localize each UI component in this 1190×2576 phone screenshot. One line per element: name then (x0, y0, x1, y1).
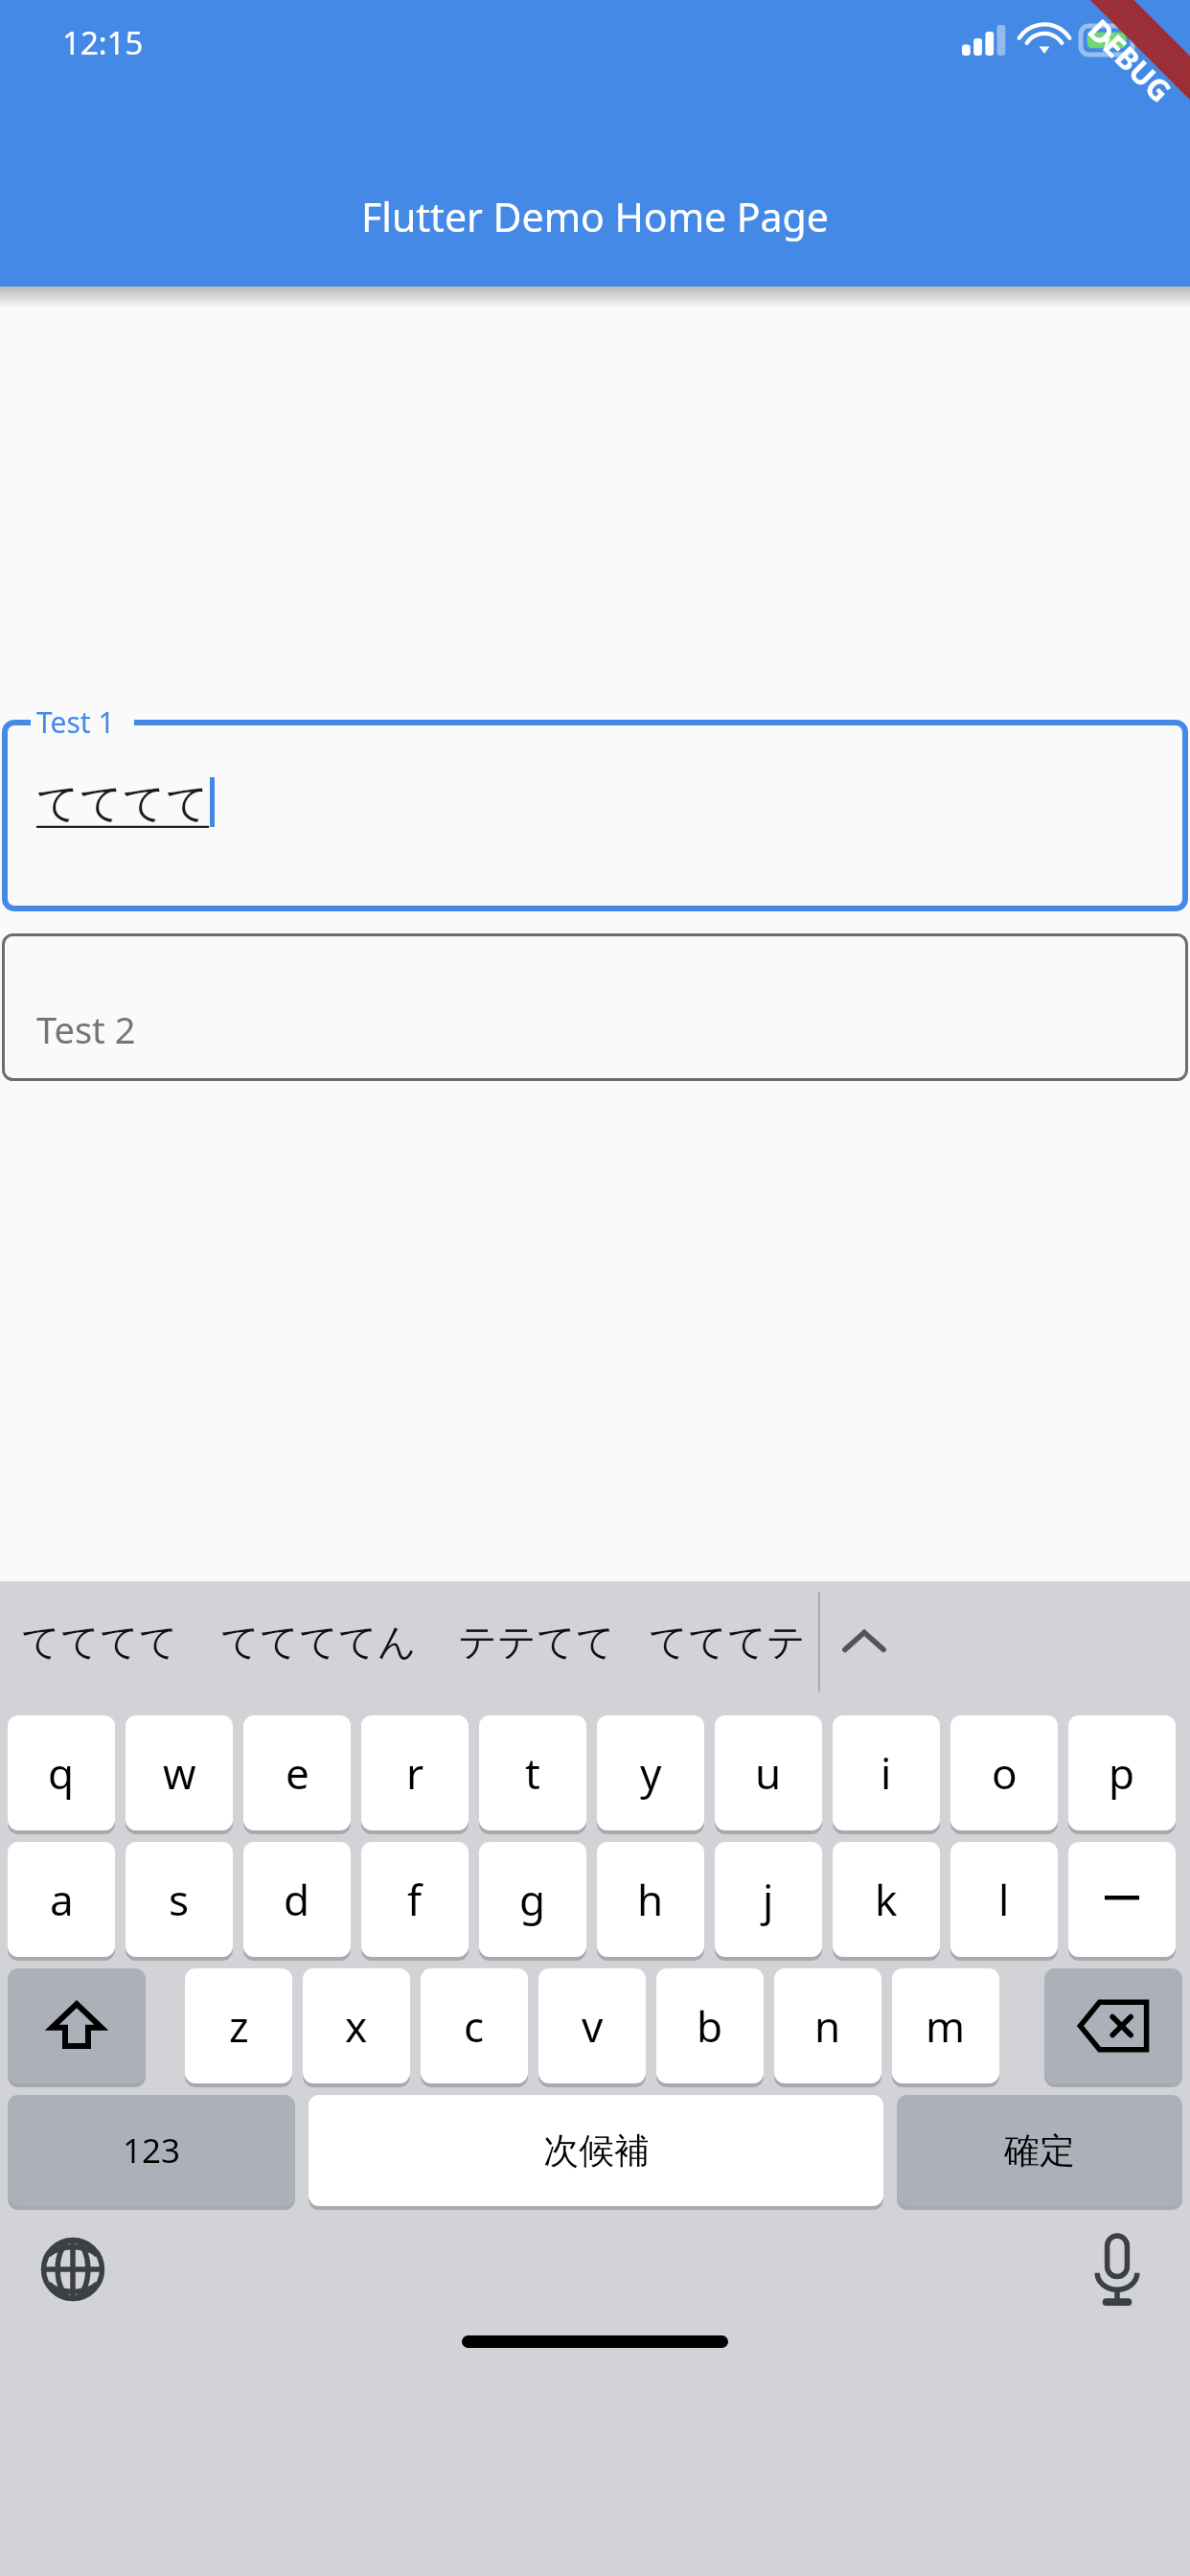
button[interactable]: p (1068, 1715, 1176, 1830)
button[interactable]: s (126, 1842, 233, 1957)
staticText: Flutter Demo Home Page (0, 190, 1190, 243)
button[interactable]: t (479, 1715, 586, 1830)
staticText: l (998, 1871, 1010, 1928)
staticText: a (50, 1871, 74, 1928)
staticText: k (875, 1871, 898, 1928)
staticText: w (163, 1744, 196, 1802)
button[interactable]: テテてて (437, 1581, 636, 1702)
button[interactable]: n (774, 1968, 881, 2083)
button[interactable]: x (303, 1968, 410, 2083)
button[interactable]: 次候補 (309, 2095, 883, 2206)
staticText: x (345, 1997, 368, 2055)
staticText: ー (1101, 1874, 1143, 1926)
staticText: t (525, 1744, 540, 1802)
staticText: c (464, 1997, 485, 2055)
button[interactable]: z (185, 1968, 292, 2083)
staticText: てててて (21, 1618, 178, 1666)
staticText: j (763, 1871, 774, 1928)
button[interactable]: k (833, 1842, 940, 1957)
button[interactable]: l (950, 1842, 1058, 1957)
button[interactable]: 確定 (897, 2095, 1182, 2206)
staticText: o (992, 1744, 1018, 1802)
staticText: 12:15 (62, 21, 144, 64)
button[interactable]: w (126, 1715, 233, 1830)
staticText: h (637, 1871, 664, 1928)
staticText: Test 1 (36, 702, 115, 742)
staticText: u (755, 1744, 782, 1802)
button[interactable]: Test 2 (2, 933, 1188, 1081)
button[interactable]: c (421, 1968, 528, 2083)
button[interactable]: てててテ (636, 1581, 818, 1702)
button[interactable]: e (243, 1715, 351, 1830)
button[interactable]: f (361, 1842, 469, 1957)
staticText: r (406, 1744, 424, 1802)
button[interactable]: g (479, 1842, 586, 1957)
button[interactable]: u (715, 1715, 822, 1830)
button[interactable]: Expand candidates (820, 1581, 908, 1702)
button[interactable]: q (8, 1715, 115, 1830)
staticText: i (881, 1744, 892, 1802)
staticText: DEBUG (1080, 10, 1181, 111)
staticText: g (519, 1871, 546, 1928)
button[interactable]: j (715, 1842, 822, 1957)
button[interactable]: a (8, 1842, 115, 1957)
staticText: e (286, 1744, 309, 1802)
staticText: テテてて (458, 1618, 615, 1666)
button[interactable]: ー (1068, 1842, 1176, 1957)
staticText: q (48, 1744, 75, 1802)
button[interactable]: v (538, 1968, 646, 2083)
staticText: m (926, 1997, 966, 2055)
button[interactable]: i (833, 1715, 940, 1830)
button[interactable]: ててててん (199, 1581, 437, 1702)
staticText: 確定 (1004, 2128, 1075, 2173)
staticText: n (814, 1997, 841, 2055)
button[interactable]: てててて (0, 1581, 199, 1702)
staticText: z (229, 1997, 249, 2055)
button[interactable]: Switch keyboard language (27, 2223, 119, 2315)
staticText: y (640, 1744, 662, 1802)
staticText: てててて (36, 777, 210, 830)
staticText: s (169, 1871, 190, 1928)
staticText: b (697, 1997, 723, 2055)
staticText: てててテ (649, 1618, 806, 1666)
staticText: 123 (123, 2127, 181, 2173)
button[interactable]: o (950, 1715, 1058, 1830)
staticText: Test 2 (36, 1004, 136, 1054)
button[interactable]: 123 (8, 2095, 295, 2206)
button[interactable]: d (243, 1842, 351, 1957)
button[interactable]: Test 1 (2, 720, 1188, 911)
staticText: d (284, 1871, 310, 1928)
button[interactable]: b (656, 1968, 764, 2083)
staticText: 次候補 (543, 2128, 650, 2173)
staticText: ててててん (220, 1618, 417, 1666)
button[interactable]: r (361, 1715, 469, 1830)
staticText: p (1109, 1744, 1135, 1802)
button[interactable]: h (597, 1842, 704, 1957)
button[interactable]: Dictation (1071, 2223, 1163, 2315)
button[interactable]: Shift (8, 1968, 146, 2083)
staticText: f (407, 1871, 423, 1928)
staticText: v (582, 1997, 604, 2055)
button[interactable]: y (597, 1715, 704, 1830)
button[interactable]: m (892, 1968, 999, 2083)
button[interactable]: Backspace (1044, 1968, 1182, 2083)
